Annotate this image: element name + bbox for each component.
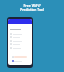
button[interactable]	[14, 56, 27, 58]
staticText: Free WiFi?	[23, 3, 41, 8]
button[interactable]	[10, 40, 22, 42]
staticText: Prediction Tool	[20, 8, 44, 12]
button[interactable]	[8, 19, 32, 24]
button[interactable]	[10, 47, 21, 49]
button[interactable]	[10, 43, 20, 45]
button[interactable]	[10, 36, 20, 38]
button[interactable]	[10, 33, 22, 35]
